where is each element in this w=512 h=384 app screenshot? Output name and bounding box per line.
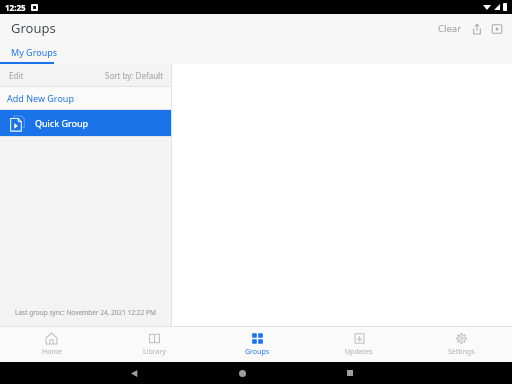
staticText: Settings (448, 347, 475, 357)
staticText: Updates (345, 347, 373, 357)
button[interactable]: Export (487, 20, 507, 38)
staticText: Edit (9, 70, 24, 81)
button[interactable]: Home (0, 327, 103, 362)
staticText: Quick Group (35, 117, 89, 129)
button[interactable]: Add New Group (0, 87, 171, 109)
button[interactable]: Groups (206, 327, 308, 362)
staticText: Last group sync: November 24, 2021 12:22… (15, 308, 156, 317)
button[interactable]: My Groups (0, 42, 69, 62)
button[interactable]: Settings (410, 327, 512, 362)
staticText: Home (42, 347, 62, 357)
button[interactable]: Share (467, 20, 487, 38)
button[interactable]: Recent apps (296, 362, 404, 384)
button[interactable]: Back (80, 362, 188, 384)
staticText: Clear (438, 22, 462, 35)
staticText: Add New Group (7, 92, 74, 104)
staticText: Library (143, 347, 166, 357)
button[interactable]: Home (188, 362, 296, 384)
staticText: My Groups (11, 46, 58, 58)
button[interactable]: Updates (308, 327, 410, 362)
staticText: 12:25 (5, 2, 26, 13)
staticText: Sort by: Default (105, 70, 164, 81)
button[interactable]: Clear (433, 17, 467, 40)
staticText: Groups (245, 347, 270, 357)
button[interactable]: Quick Group (0, 110, 171, 136)
staticText: Groups (11, 19, 56, 37)
button[interactable]: Library (103, 327, 206, 362)
